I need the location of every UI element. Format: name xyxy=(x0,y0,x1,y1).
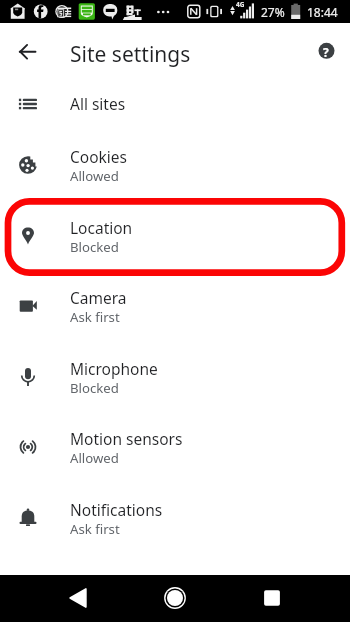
staticText: Notifications xyxy=(70,499,163,520)
button[interactable]: Motion sensors xyxy=(0,412,350,483)
button[interactable]: Microphone xyxy=(0,342,350,413)
staticText: Allowed xyxy=(70,167,119,185)
staticText: Ask first xyxy=(70,520,120,538)
staticText: All sites xyxy=(70,93,126,114)
staticText: Motion sensors xyxy=(70,428,183,449)
button[interactable]: Help and feedback xyxy=(306,29,346,69)
staticText: ? xyxy=(323,44,329,60)
staticText: 18:44 xyxy=(307,4,338,20)
staticText: Allowed xyxy=(70,449,119,467)
button[interactable]: Navigate up xyxy=(4,27,52,75)
staticText: Cookies xyxy=(70,146,127,167)
staticText: 27% xyxy=(261,4,285,20)
staticText: Location xyxy=(70,217,133,238)
button[interactable]: Camera xyxy=(0,271,350,342)
button[interactable]: Notifications xyxy=(0,483,350,554)
staticText: Ask first xyxy=(70,308,120,326)
staticText: Camera xyxy=(70,287,127,308)
staticText: Blocked xyxy=(70,238,119,256)
staticText: Site settings xyxy=(70,40,191,69)
button[interactable]: Cookies xyxy=(0,130,350,201)
staticText: Microphone xyxy=(70,358,158,379)
button[interactable]: Back xyxy=(55,575,101,621)
button[interactable]: Location xyxy=(0,201,350,272)
staticText: 4G xyxy=(236,0,245,9)
button[interactable]: All sites xyxy=(0,77,350,130)
staticText: Blocked xyxy=(70,379,119,397)
button[interactable]: Recent apps xyxy=(249,575,295,621)
button[interactable]: Home xyxy=(152,575,198,621)
